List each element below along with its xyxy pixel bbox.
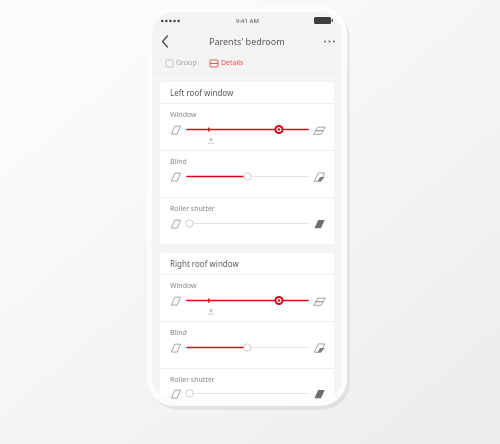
staticText: Left roof window [170,87,234,98]
staticText: Blind [170,328,187,338]
button[interactable]: Window [160,275,334,321]
staticText: Blind [170,157,187,167]
button[interactable]: Roller shutter [160,198,334,244]
staticText: Group [176,58,197,68]
button[interactable]: Blind [160,322,334,368]
button[interactable]: More options [319,31,339,51]
staticText: Window [170,281,197,291]
button[interactable]: Group [165,55,198,71]
button[interactable]: Roller shutter [160,369,334,400]
staticText: Right roof window [170,258,239,269]
staticText: Details [221,58,244,68]
staticText: Window [170,110,197,120]
button[interactable]: Details [209,55,245,71]
button[interactable]: Blind [160,151,334,197]
staticText: Roller shutter [170,375,215,385]
staticText: 9:41 AM [236,17,259,25]
staticText: Roller shutter [170,204,215,214]
staticText: Parents' bedroom [209,35,285,47]
button[interactable]: Back [155,31,175,51]
button[interactable]: Window [160,104,334,150]
